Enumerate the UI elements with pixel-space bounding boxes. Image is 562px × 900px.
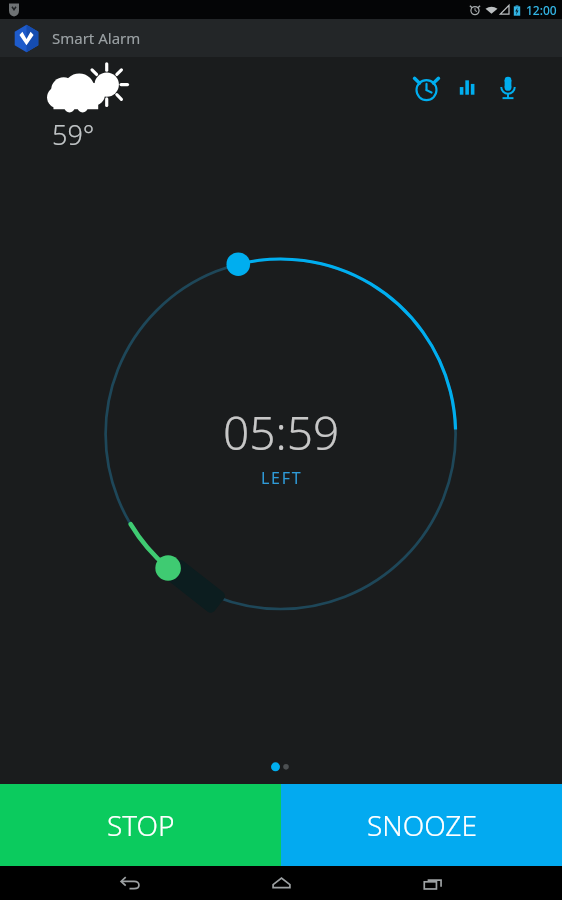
button[interactable]: Statistics — [449, 70, 485, 106]
staticText: LEFT — [261, 467, 303, 489]
staticText: 12:00 — [526, 2, 557, 18]
staticText: 59° — [52, 116, 95, 153]
staticText: 05:59 — [223, 401, 340, 464]
button[interactable]: Voice recordings — [490, 70, 526, 106]
staticText: STOP — [107, 806, 175, 844]
button[interactable]: Smart Alarm — [11, 23, 41, 53]
button[interactable]: SNOOZE — [281, 784, 562, 866]
staticText: SNOOZE — [367, 806, 477, 844]
button[interactable]: Alarms — [408, 70, 444, 106]
button[interactable]: Home — [258, 866, 304, 900]
button[interactable]: Recent apps — [410, 866, 456, 900]
staticText: Smart Alarm — [52, 28, 141, 48]
button[interactable]: STOP — [0, 784, 281, 866]
button[interactable]: Back — [106, 866, 152, 900]
button[interactable]: Weather 59 degrees — [48, 63, 120, 157]
